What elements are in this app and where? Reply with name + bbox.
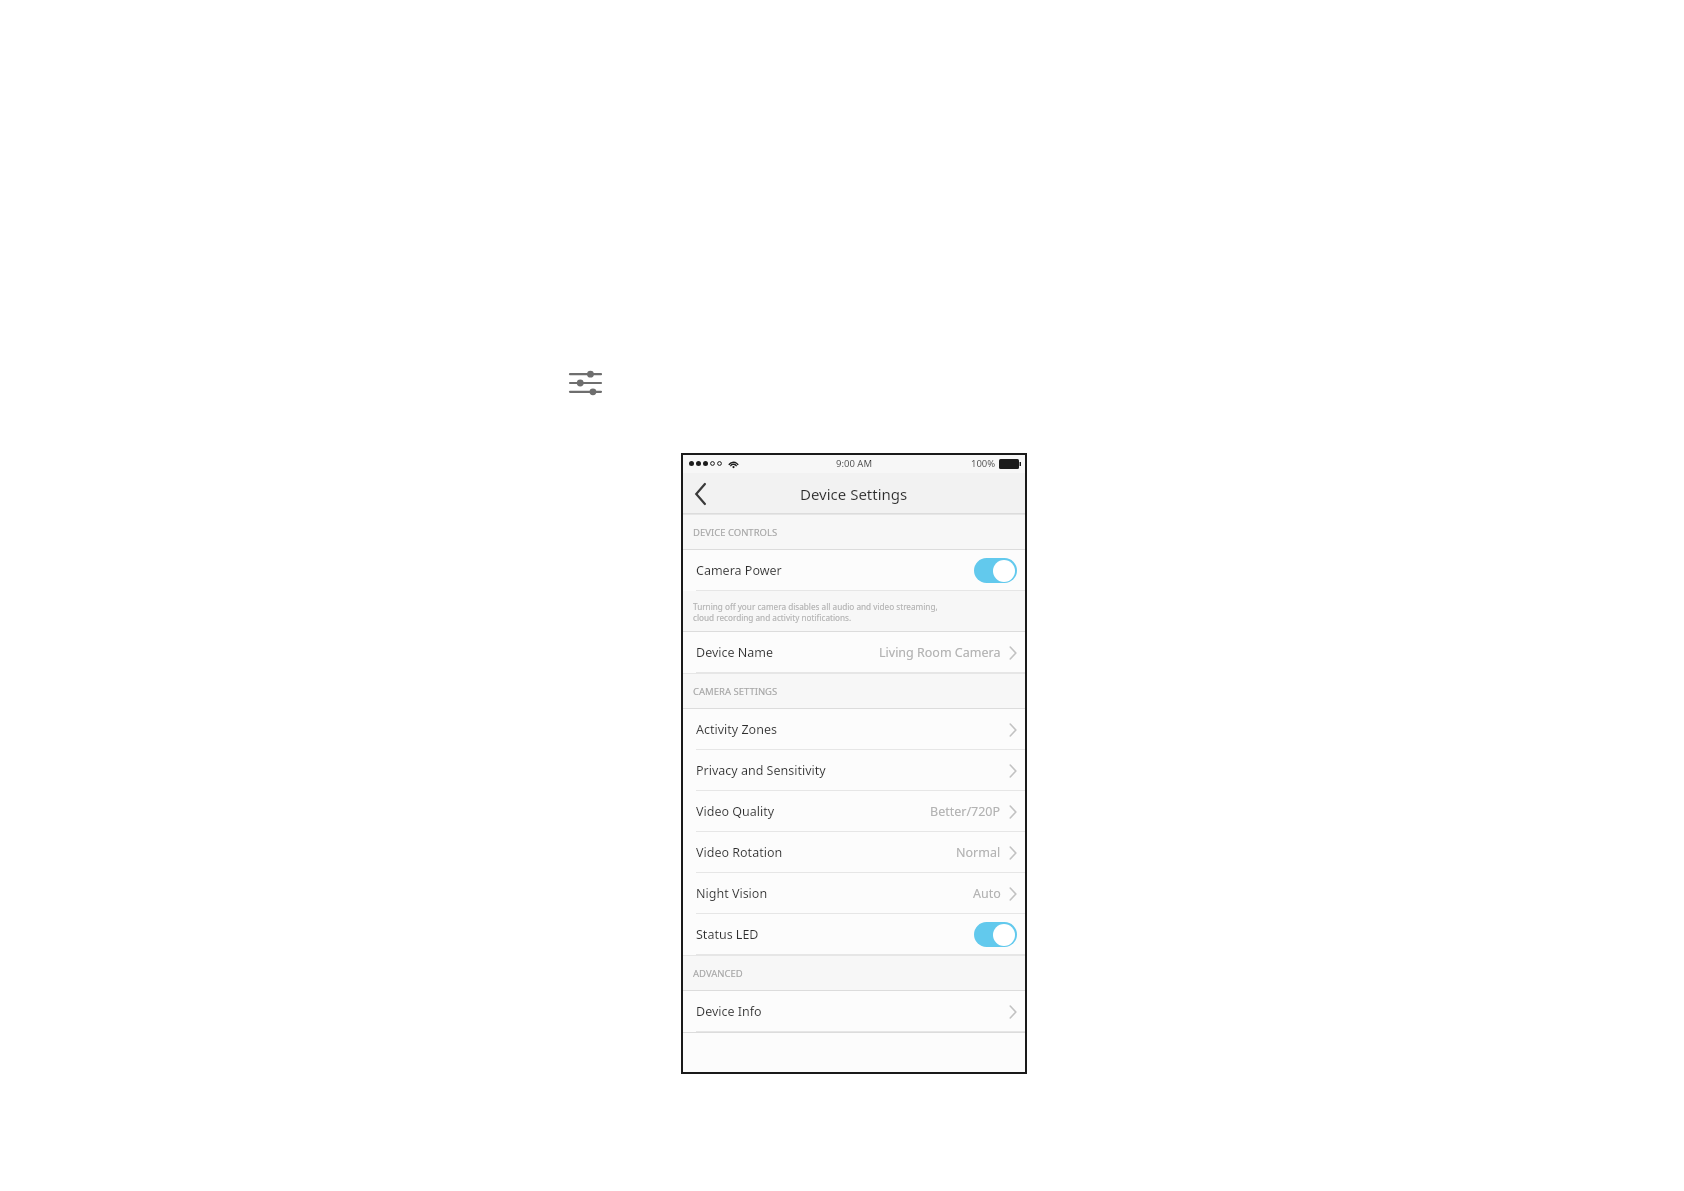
staticText: Better/720P — [930, 803, 1001, 820]
staticText: 9:00 AM — [836, 457, 873, 470]
staticText: Device Name — [696, 644, 774, 661]
staticText: Living Room Camera — [879, 644, 1001, 661]
staticText: Camera Power — [696, 562, 782, 579]
staticText: Status LED — [696, 926, 759, 943]
staticText: Video Quality — [696, 803, 775, 820]
staticText: Turning off your camera disables all aud… — [693, 601, 938, 623]
button[interactable]: Activity Zones — [681, 709, 1027, 750]
button[interactable]: Video Quality — [681, 791, 1027, 832]
button[interactable]: Camera Power — [681, 550, 1027, 591]
button[interactable]: Privacy and Sensitivity — [681, 750, 1027, 791]
staticText: ADVANCED — [693, 967, 743, 980]
button[interactable]: Device Name — [681, 632, 1027, 673]
staticText: Video Rotation — [696, 844, 783, 861]
button[interactable]: Settings sliders — [570, 370, 601, 396]
staticText: Device Info — [696, 1003, 762, 1020]
button[interactable]: Status LED toggle — [974, 922, 1017, 947]
staticText: CAMERA SETTINGS — [693, 685, 778, 698]
staticText: Privacy and Sensitivity — [696, 762, 826, 779]
button[interactable]: Video Rotation — [681, 832, 1027, 873]
staticText: Activity Zones — [696, 721, 777, 738]
button[interactable]: Status LED — [681, 914, 1027, 955]
button[interactable]: Camera Power toggle — [974, 558, 1017, 583]
staticText: Night Vision — [696, 885, 768, 902]
staticText: Device Settings — [800, 484, 908, 504]
staticText: Normal — [956, 844, 1001, 861]
button[interactable]: Back — [681, 474, 721, 514]
button[interactable]: Night Vision — [681, 873, 1027, 914]
staticText: 100% — [971, 457, 996, 470]
staticText: DEVICE CONTROLS — [693, 526, 778, 539]
staticText: Auto — [973, 885, 1001, 902]
button[interactable]: Device Info — [681, 991, 1027, 1032]
